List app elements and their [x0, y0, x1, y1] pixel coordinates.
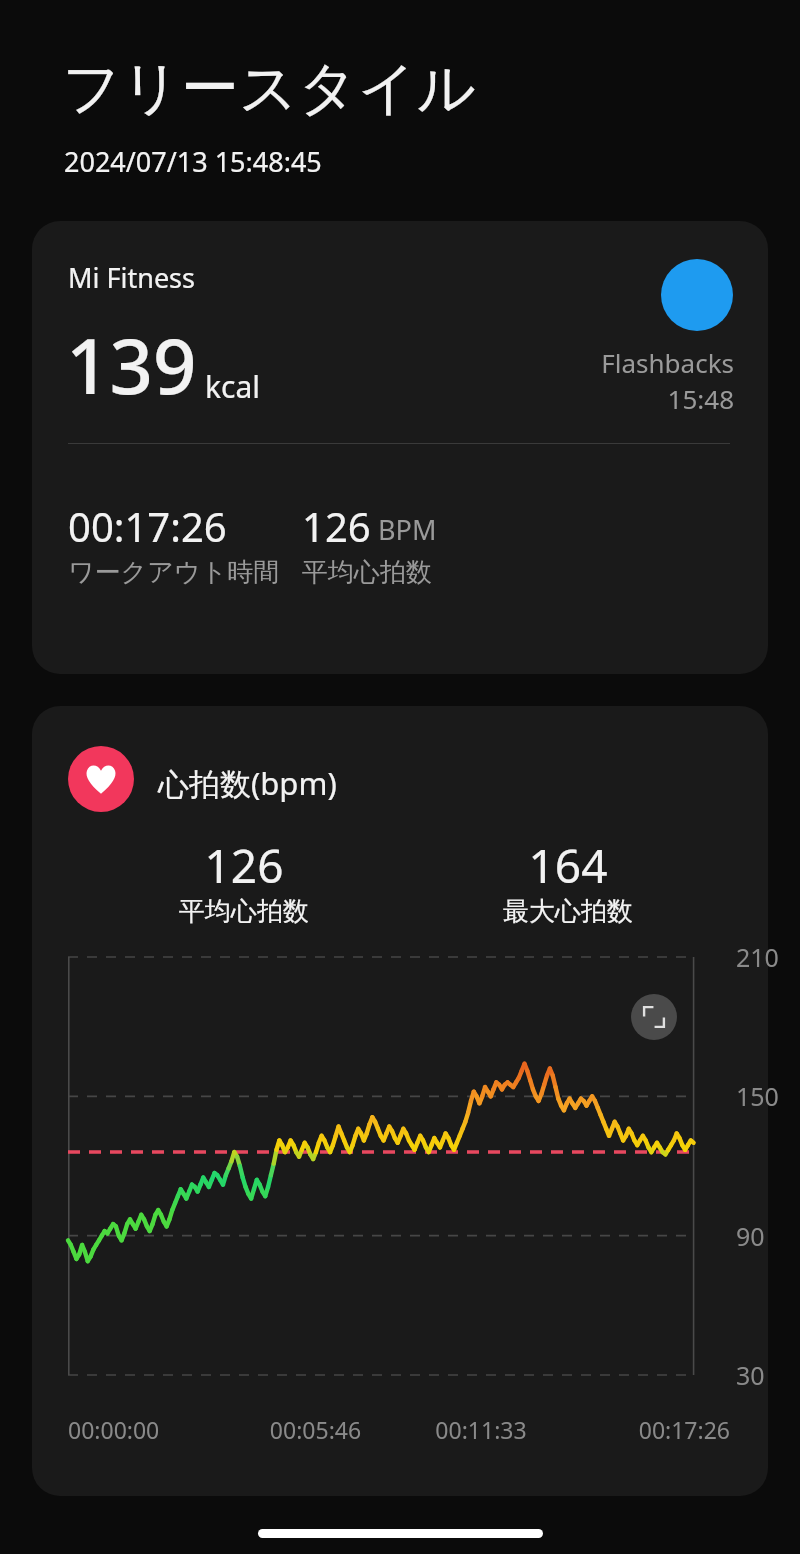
staticText: 00:11:33 — [398, 1414, 564, 1445]
staticText: 210 — [736, 940, 779, 974]
staticText: 150 — [736, 1079, 779, 1113]
staticText: 00:17:26 — [564, 1414, 730, 1445]
staticText: Flashbacks — [596, 345, 734, 380]
staticText: 139 — [66, 313, 197, 417]
staticText: 00:17:26 — [68, 499, 227, 553]
staticText: フリースタイル — [62, 52, 477, 125]
staticText: kcal — [205, 366, 260, 407]
staticText: ワークアウト時間 — [68, 556, 280, 589]
staticText: 00:00:00 — [68, 1414, 233, 1445]
staticText: 15:48 — [596, 381, 734, 416]
staticText: 126 — [132, 834, 356, 897]
staticText: 心拍数(bpm) — [158, 762, 337, 804]
staticText: 平均心拍数 — [132, 895, 356, 928]
staticText: BPM — [378, 511, 437, 548]
button[interactable]: Expand chart — [631, 994, 677, 1040]
staticText: 30 — [736, 1358, 765, 1392]
button[interactable]: Mi Fitness — [32, 221, 768, 674]
staticText: 平均心拍数 — [302, 556, 432, 589]
staticText: 90 — [736, 1219, 765, 1253]
staticText: 126 — [302, 499, 371, 553]
staticText: 00:05:46 — [233, 1414, 398, 1445]
staticText: 最大心拍数 — [456, 895, 680, 928]
staticText: Mi Fitness — [68, 259, 195, 296]
staticText: 164 — [456, 834, 680, 897]
button[interactable]: Flashbacks avatar — [661, 259, 733, 331]
staticText: 2024/07/13 15:48:45 — [64, 143, 322, 180]
